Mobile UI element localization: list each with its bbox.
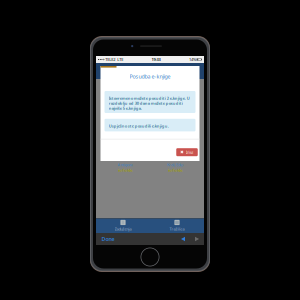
staticText: Sofokle [117, 168, 132, 173]
button[interactable]: Back [176, 233, 190, 245]
staticText: razdoblju od 30 dana možete posuditi [109, 100, 183, 106]
button[interactable]: Forward [190, 233, 204, 245]
staticText: 19:33 [152, 57, 161, 62]
button[interactable]: Done [96, 233, 117, 245]
staticText: Uspješno ste posudili e-knjigu. [109, 123, 169, 129]
staticText: Istovremeno možete posuditi 2 e-knjige. … [109, 96, 190, 101]
staticText: najviše 5 e-knjiga. [109, 105, 142, 111]
staticText: Tražilica [169, 226, 184, 232]
button[interactable]: Zaduženja [96, 218, 150, 233]
button[interactable]: Tražilica [150, 218, 204, 233]
button[interactable]: Izlaz [176, 148, 198, 156]
staticText: Posudba e-knjige [129, 73, 170, 80]
staticText: Izlaz [186, 149, 194, 155]
staticText: Kralj Edip [167, 162, 183, 167]
staticText: Zaduženja [114, 226, 131, 232]
staticText: Done [101, 235, 114, 243]
staticText: Sofokle [167, 168, 182, 173]
staticText: TELE2 LTE [104, 57, 123, 62]
staticText: Antigona [117, 162, 132, 167]
staticText: 14% [189, 57, 196, 62]
